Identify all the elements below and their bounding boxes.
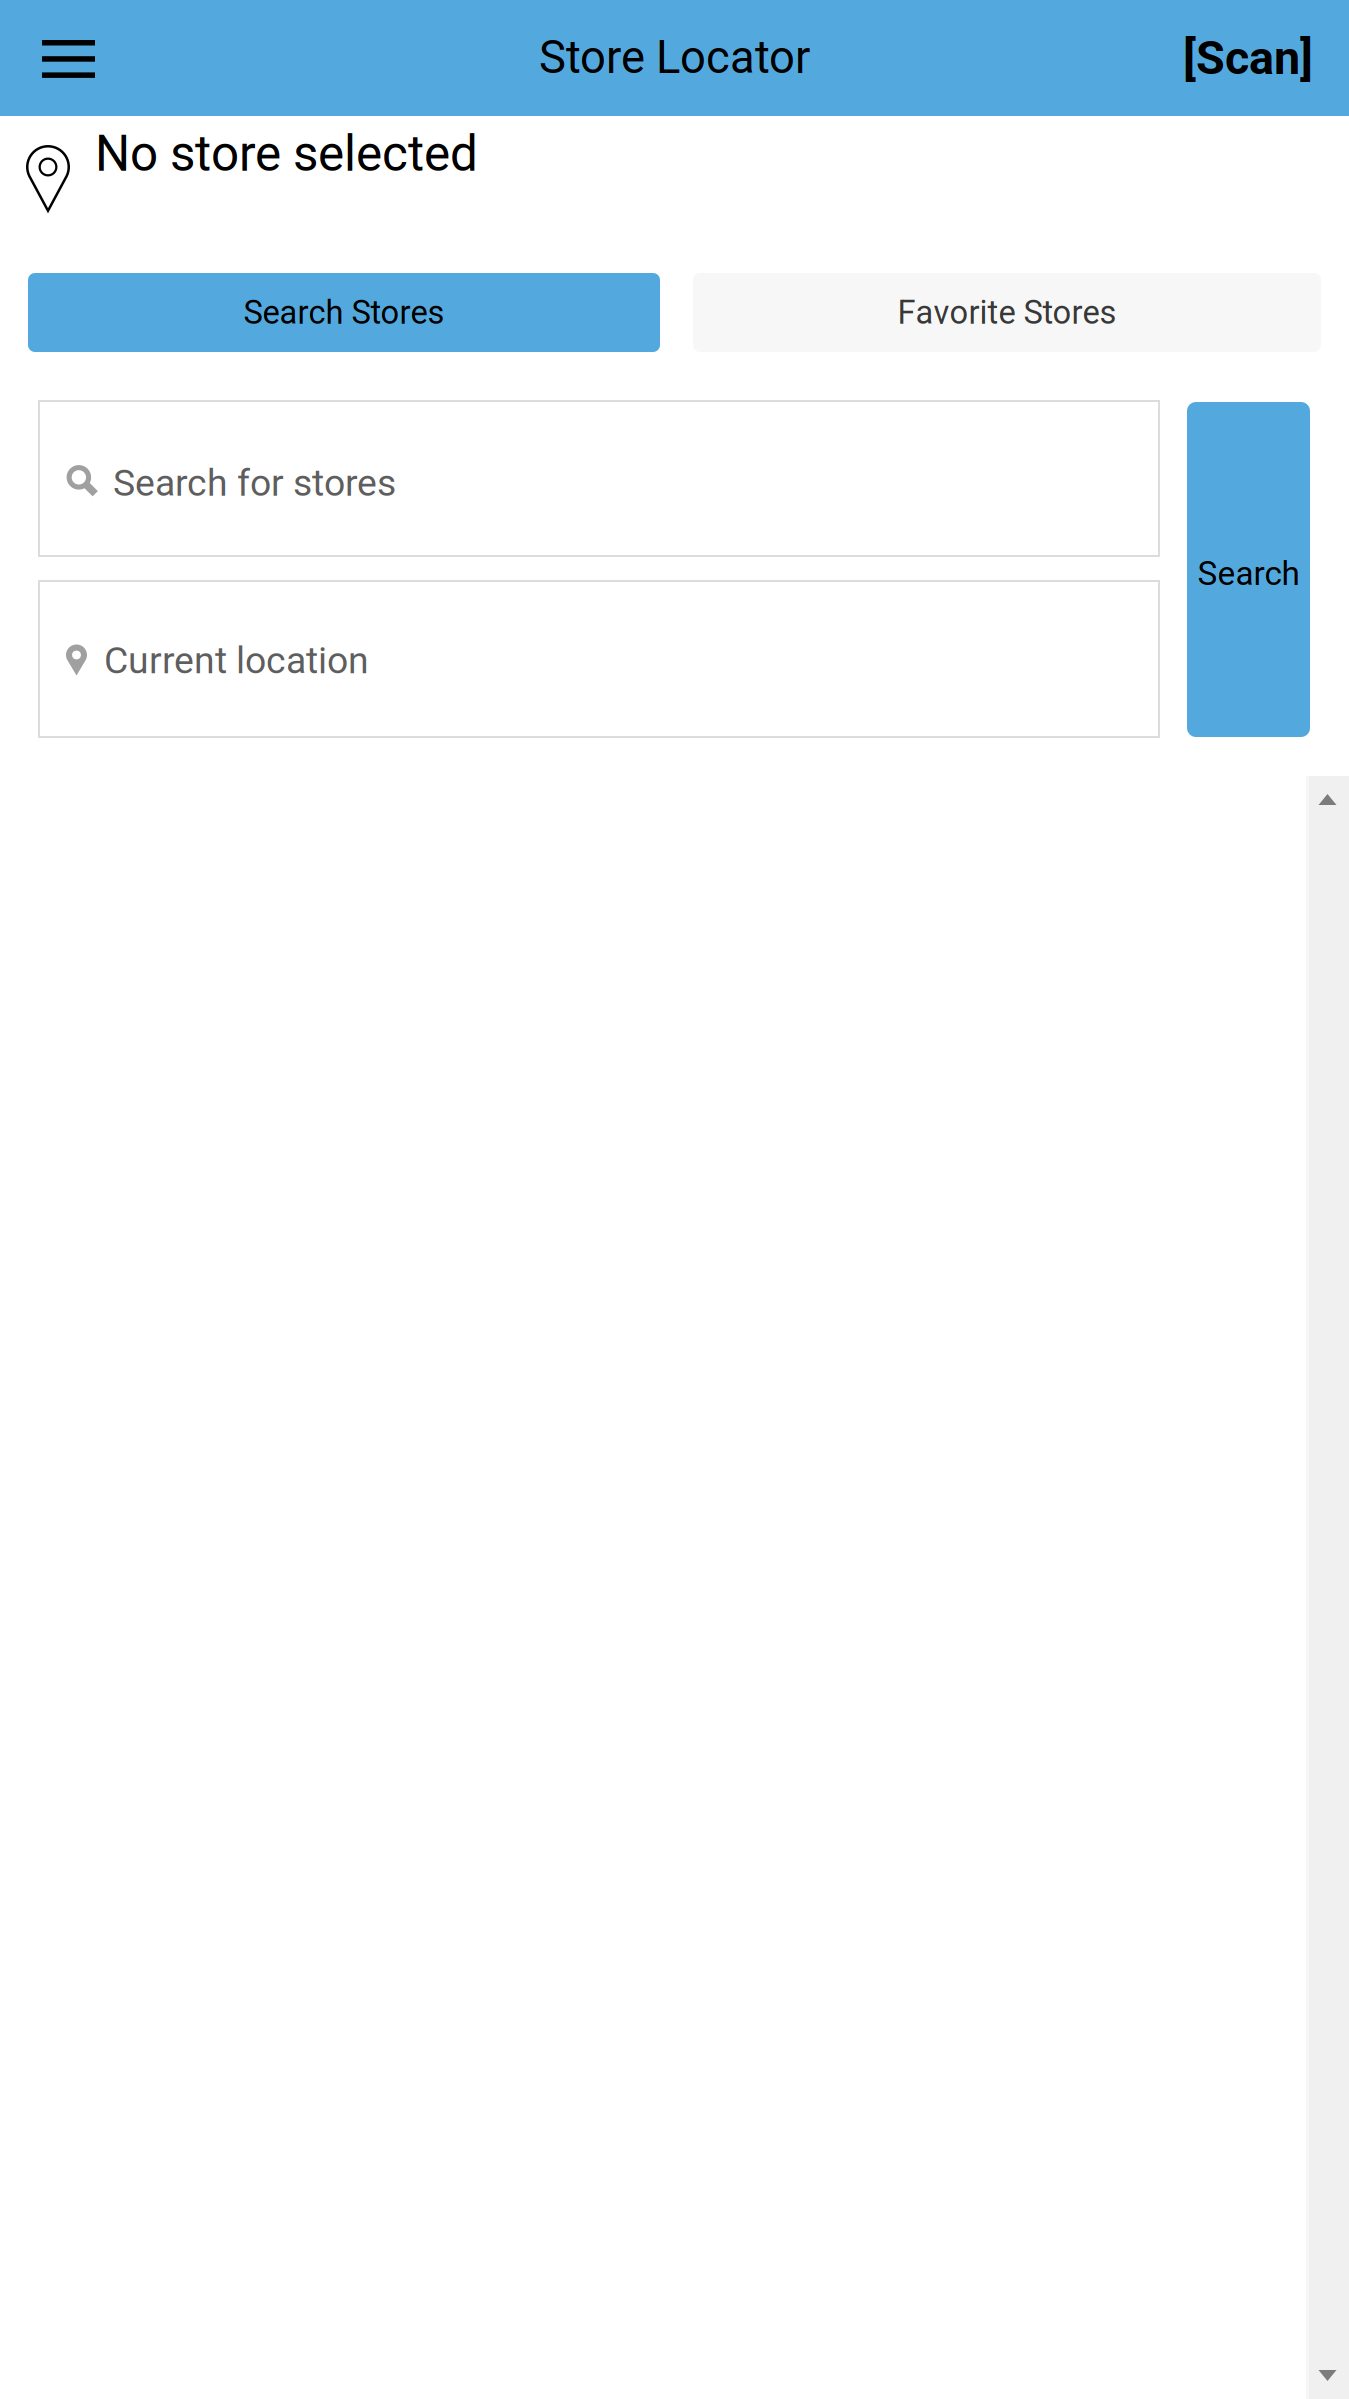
staticText: Current location <box>104 639 369 682</box>
button[interactable]: Scroll down <box>1306 2356 1349 2399</box>
staticText: Search Stores <box>243 293 444 332</box>
staticText: [Scan] <box>1183 31 1313 85</box>
staticText: Search <box>1197 554 1299 593</box>
button[interactable]: Search for stores <box>38 400 1160 557</box>
staticText: No store selected <box>95 125 478 183</box>
button[interactable]: Search <box>1187 402 1310 737</box>
staticText: Store Locator <box>539 31 810 84</box>
button[interactable]: Current location <box>38 580 1160 738</box>
button[interactable]: Scroll up <box>1306 776 1349 819</box>
staticText: Favorite Stores <box>897 293 1116 332</box>
button[interactable]: Menu <box>0 0 137 116</box>
button[interactable]: Favorite Stores <box>693 273 1321 352</box>
staticText: Search for stores <box>113 461 396 505</box>
button[interactable]: [Scan] <box>1165 0 1331 116</box>
button[interactable]: Search Stores <box>28 273 660 352</box>
